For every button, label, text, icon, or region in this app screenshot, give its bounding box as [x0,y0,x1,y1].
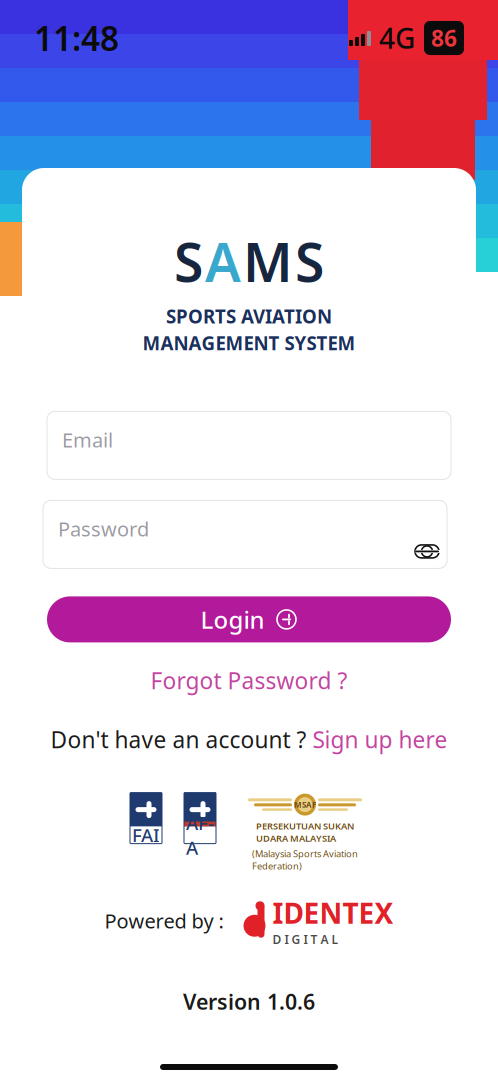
button[interactable]: Login [47,596,451,642]
staticText: MSAF [294,799,316,810]
staticText: Forgot Password ? [150,665,347,695]
staticText: Email [62,426,113,453]
staticText: 11:48 [34,16,119,60]
staticText: S [174,226,203,297]
staticText: Password [58,515,149,542]
button[interactable]: Sign up here [312,720,447,759]
button[interactable]: Show password [407,534,447,568]
staticText: Powered by : [104,907,223,934]
staticText: AFA [186,810,214,860]
staticText: A [205,226,241,297]
staticText: MANAGEMENT SYSTEM [142,331,355,355]
staticText: SPORTS AVIATION [166,304,332,329]
staticText: 86 [431,23,457,53]
staticText: 4G [379,19,415,57]
button[interactable]: Forgot Password ? [138,660,359,700]
staticText: Login [200,603,264,635]
staticText: Version 1.0.6 [183,987,315,1016]
staticText: M [243,226,293,297]
staticText: IDENTEX [272,894,393,931]
staticText: Sign up here [312,724,447,755]
staticText: PERSEKUTUAN SUKAN UDARA MALAYSIA [256,820,354,844]
staticText: Don't have an account ? [50,724,312,755]
staticText: FAI [132,823,160,847]
staticText: D I G I T A L [272,931,338,947]
staticText: S [295,226,324,297]
staticText: (Malaysia Sports Aviation Federation) [252,847,358,872]
